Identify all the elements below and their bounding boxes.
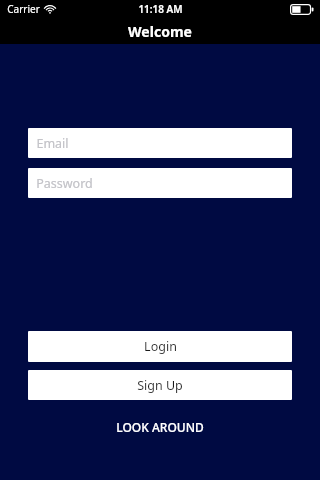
button[interactable]: Sign Up [28,370,292,400]
staticText: Email [36,135,69,152]
staticText: LOOK AROUND [116,419,204,435]
other: Battery level [290,4,314,15]
staticText: Carrier [7,2,40,16]
button[interactable]: Login [28,331,292,362]
button[interactable]: Password [28,168,292,198]
staticText: 11:18 AM [138,2,183,16]
button[interactable]: Email [28,128,292,158]
button[interactable]: LOOK AROUND [0,416,320,438]
staticText: Login [144,338,177,355]
staticText: Sign Up [137,377,183,394]
staticText: Password [36,175,93,192]
staticText: Welcome [128,22,192,41]
other: Wi-Fi signal [44,4,56,14]
